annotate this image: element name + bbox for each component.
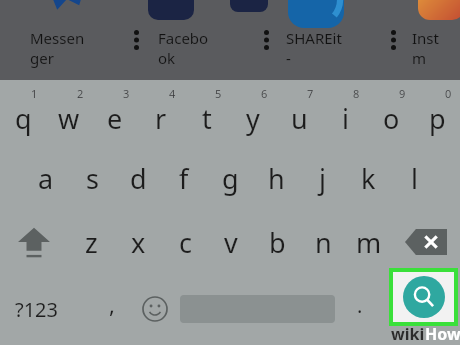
staticText: Messen (30, 28, 85, 48)
button[interactable]: Inst (412, 28, 460, 68)
button[interactable]: More options (258, 26, 274, 54)
staticText: b (269, 224, 286, 261)
button[interactable]: x (115, 211, 162, 273)
staticText: q (15, 100, 32, 137)
button[interactable]: f (161, 146, 207, 211)
staticText: o (383, 100, 400, 137)
button[interactable]: Shift (0, 211, 68, 273)
staticText: m (356, 224, 382, 261)
staticText: e (107, 100, 123, 137)
staticText: d (130, 160, 147, 197)
staticText: How (425, 323, 460, 345)
button[interactable]: 5 (184, 80, 230, 146)
staticText: m (412, 48, 427, 68)
button[interactable]: 8 (322, 80, 368, 146)
button[interactable]: c (162, 211, 208, 273)
staticText: g (222, 160, 239, 197)
button[interactable]: Search (393, 272, 454, 322)
button[interactable]: k (345, 146, 391, 211)
staticText: 5 (215, 86, 222, 101)
button[interactable]: l (391, 146, 437, 211)
button[interactable]: More options (128, 26, 144, 54)
staticText: 8 (353, 86, 360, 101)
staticText: p (429, 100, 446, 137)
button[interactable]: m (346, 211, 392, 273)
button[interactable]: 6 (230, 80, 276, 146)
staticText: l (411, 160, 418, 197)
staticText: Facebo (158, 28, 209, 48)
staticText: x (131, 224, 146, 261)
staticText: ok (158, 48, 176, 68)
staticText: y (246, 100, 260, 137)
button[interactable]: . (337, 273, 383, 345)
staticText: n (315, 224, 332, 261)
staticText: 9 (399, 86, 406, 101)
button[interactable]: 2 (46, 80, 92, 146)
button[interactable]: a (23, 146, 69, 211)
staticText: ger (30, 48, 54, 68)
button[interactable]: Messen (30, 28, 108, 68)
staticText: s (86, 160, 99, 197)
button[interactable]: Delete (392, 211, 460, 273)
button[interactable]: v (208, 211, 254, 273)
staticText: 1 (31, 86, 38, 101)
staticText: j (319, 160, 326, 197)
staticText: t (202, 100, 212, 137)
button[interactable]: 9 (368, 80, 414, 146)
button[interactable]: s (69, 146, 115, 211)
button[interactable]: b (254, 211, 300, 273)
button[interactable]: d (115, 146, 161, 211)
staticText: v (224, 224, 238, 261)
button[interactable]: More options (385, 26, 401, 54)
staticText: u (291, 100, 308, 137)
button[interactable]: Facebo (158, 28, 236, 68)
staticText: a (38, 160, 54, 197)
staticText: h (268, 160, 285, 197)
staticText: f (179, 160, 189, 197)
staticText: 0 (445, 86, 452, 101)
staticText: Inst (412, 28, 439, 48)
staticText: c (179, 224, 192, 261)
button[interactable]: , (92, 273, 132, 345)
button[interactable]: n (300, 211, 346, 273)
staticText: wiki (391, 323, 425, 345)
button[interactable]: g (207, 146, 253, 211)
button[interactable]: j (299, 146, 345, 211)
button[interactable]: 3 (92, 80, 138, 146)
button[interactable]: ?123 (0, 273, 92, 345)
staticText: 2 (77, 86, 84, 101)
staticText: , (109, 289, 115, 319)
staticText: 6 (261, 86, 268, 101)
staticText: r (155, 100, 167, 137)
staticText: . (357, 292, 363, 319)
staticText: w (58, 100, 80, 137)
staticText: k (361, 160, 376, 197)
button[interactable]: SHAREit (286, 28, 364, 68)
button[interactable]: Emoji (132, 273, 178, 345)
button[interactable]: 1 (0, 80, 46, 146)
staticText: 3 (123, 86, 130, 101)
staticText: i (342, 100, 349, 137)
button[interactable]: 0 (414, 80, 460, 146)
button[interactable]: 4 (138, 80, 184, 146)
staticText: z (85, 224, 98, 261)
button[interactable]: h (253, 146, 299, 211)
staticText: ?123 (15, 296, 58, 323)
staticText: 4 (169, 86, 176, 101)
staticText: SHAREit (286, 28, 342, 48)
staticText: - (286, 48, 291, 68)
staticText: 7 (307, 86, 314, 101)
button[interactable]: 7 (276, 80, 322, 146)
button[interactable]: z (68, 211, 115, 273)
